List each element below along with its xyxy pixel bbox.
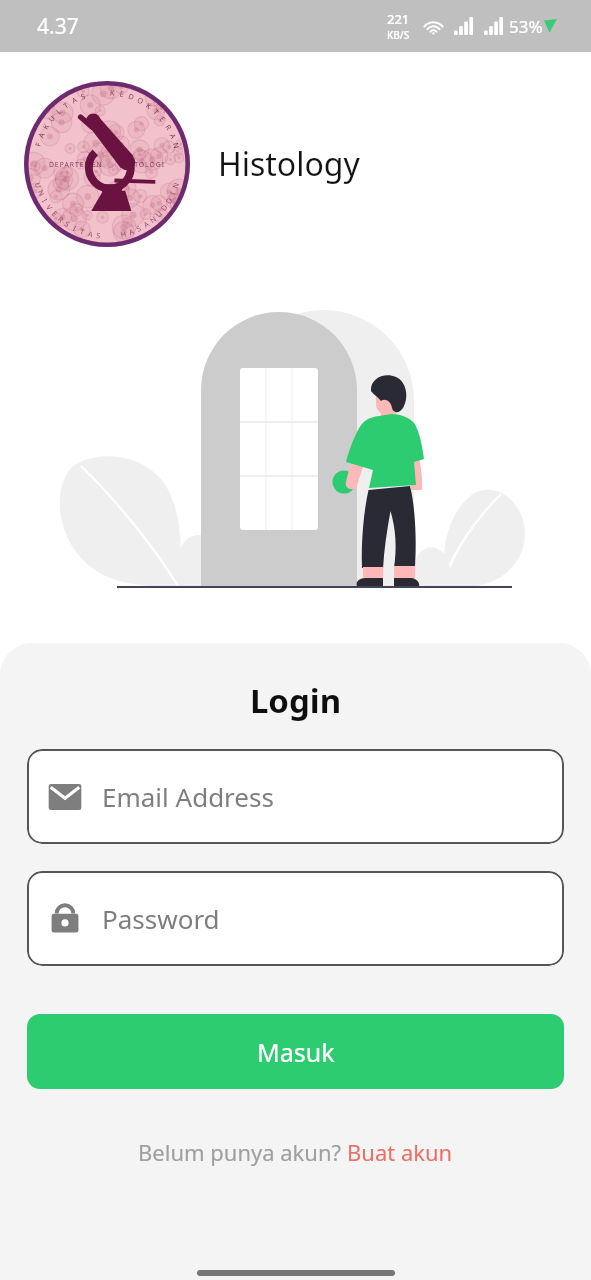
button[interactable]: Buat akun (347, 1137, 453, 1167)
staticText: Login (0, 678, 591, 723)
staticText: Buat akun (347, 1137, 453, 1167)
staticText: 4.37 (37, 12, 79, 41)
staticText: 53% (509, 15, 543, 38)
staticText: KB/S (387, 28, 410, 42)
staticText: Belum punya akun? (138, 1137, 347, 1167)
staticText: Histology (218, 142, 360, 186)
button[interactable]: Password (27, 871, 564, 966)
button[interactable]: Masuk (27, 1014, 564, 1089)
staticText: Password (102, 901, 220, 936)
staticText: Email Address (102, 779, 274, 814)
button[interactable]: Email Address (27, 749, 564, 844)
staticText: Masuk (257, 1035, 335, 1069)
other: Histology department logo (24, 81, 190, 247)
staticText: 221 (387, 10, 410, 28)
